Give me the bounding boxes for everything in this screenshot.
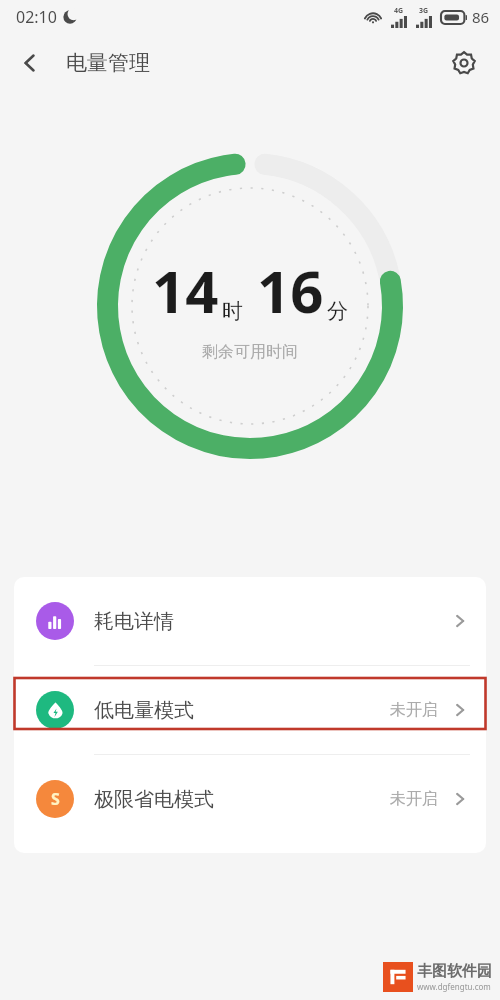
staticText: www.dgfengtu.com: [417, 981, 491, 992]
staticText: 86: [472, 7, 490, 27]
button[interactable]: 低电量模式: [14, 666, 486, 754]
staticText: 电量管理: [66, 50, 150, 76]
staticText: 4G: [394, 6, 404, 16]
button[interactable]: Settings: [440, 39, 488, 87]
staticText: 02:10: [16, 6, 57, 28]
staticText: 时: [222, 298, 243, 324]
button[interactable]: Back: [6, 39, 54, 87]
staticText: 16: [257, 251, 324, 330]
staticText: 耗电详情: [94, 609, 174, 634]
staticText: 14: [152, 251, 219, 330]
button[interactable]: 耗电详情: [14, 577, 486, 665]
staticText: 极限省电模式: [94, 787, 214, 812]
staticText: 剩余可用时间: [202, 342, 298, 362]
staticText: 3G: [419, 6, 429, 16]
staticText: 未开启: [390, 700, 438, 720]
staticText: 低电量模式: [94, 698, 194, 723]
button[interactable]: S: [14, 755, 486, 843]
staticText: S: [51, 788, 60, 810]
staticText: 分: [327, 298, 348, 324]
staticText: 未开启: [390, 789, 438, 809]
staticText: 丰图软件园: [417, 962, 492, 981]
